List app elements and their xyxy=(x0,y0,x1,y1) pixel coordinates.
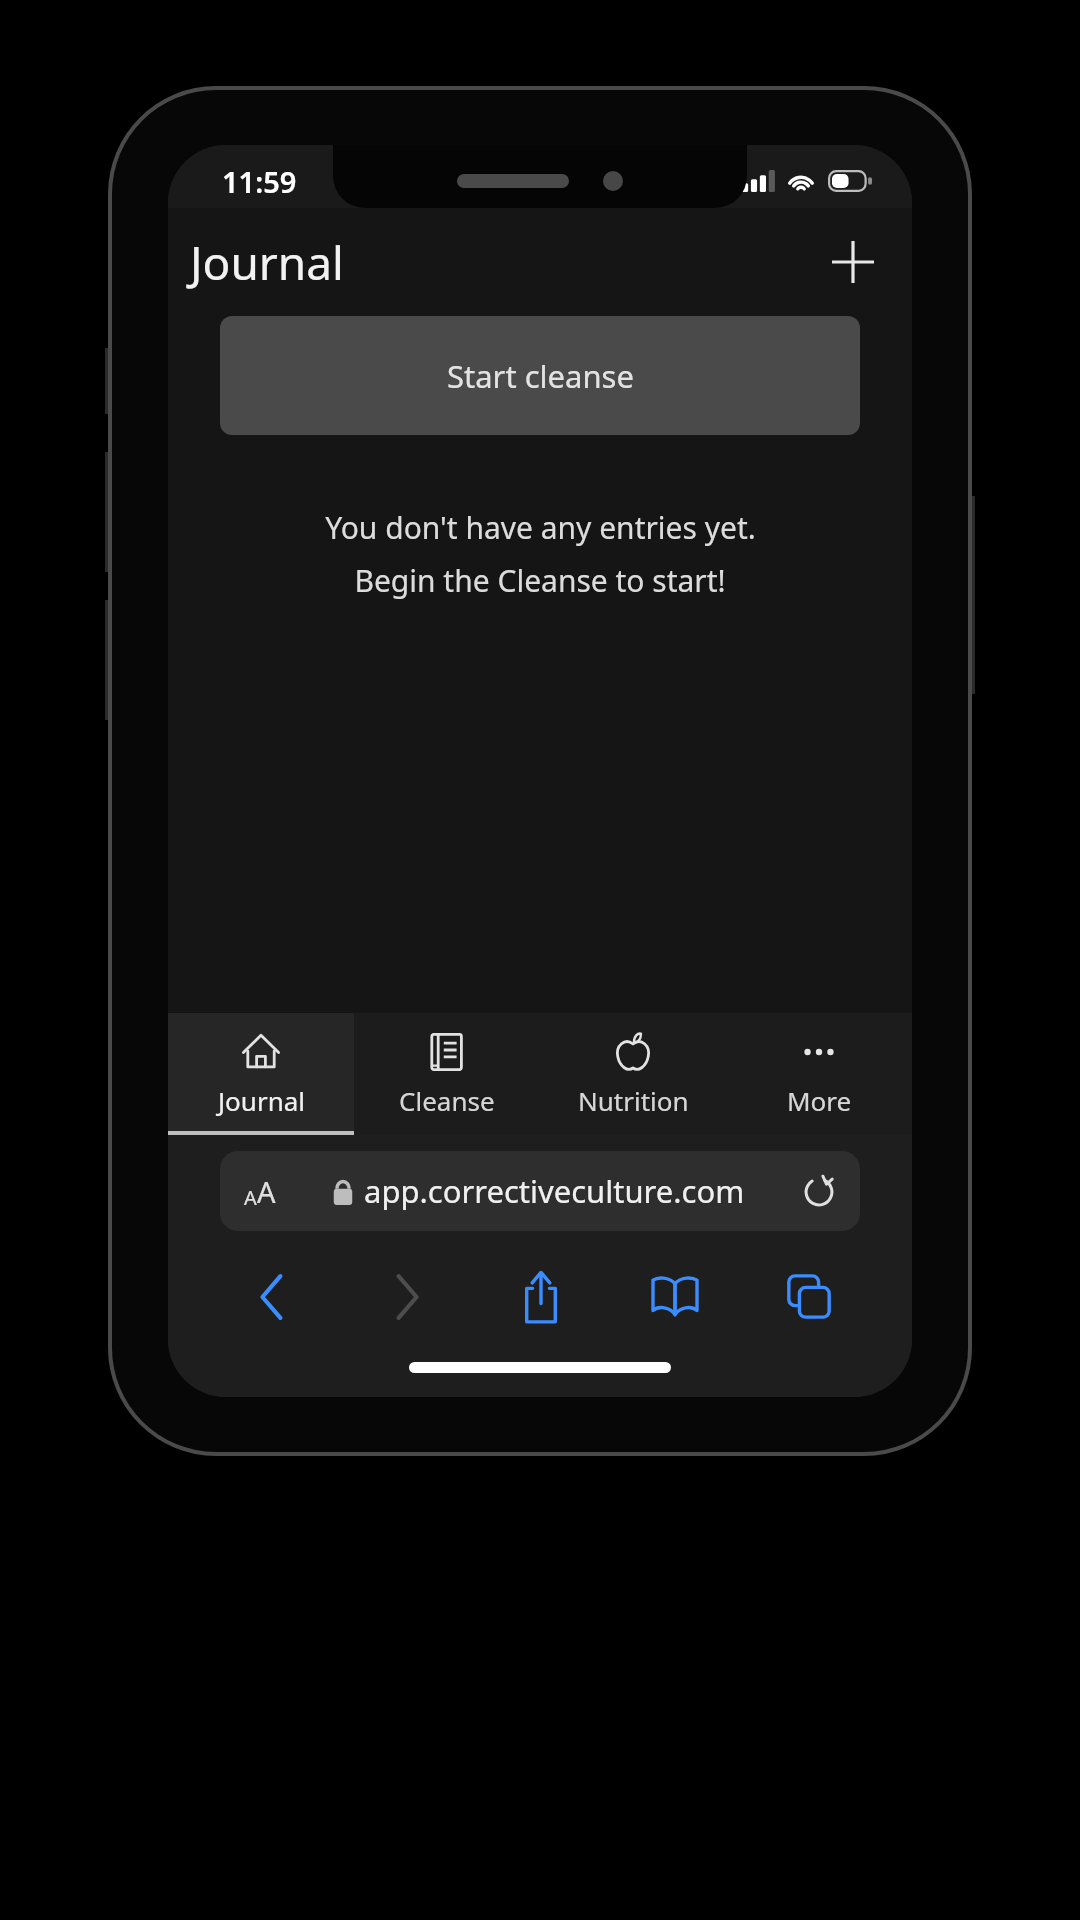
staticText: You don't have any entries yet. xyxy=(325,507,756,548)
staticText: Start cleanse xyxy=(447,355,634,397)
staticText: Cleanse xyxy=(399,1083,495,1118)
staticText: A xyxy=(257,1172,276,1211)
button[interactable]: Tabs xyxy=(742,1253,876,1341)
button[interactable]: Forward xyxy=(339,1253,474,1341)
button[interactable]: Back xyxy=(204,1253,339,1341)
staticText: Nutrition xyxy=(578,1083,689,1118)
button[interactable]: Journal xyxy=(168,1013,354,1135)
staticText: Journal xyxy=(190,231,344,294)
staticText: app.correctiveculture.com xyxy=(364,1170,745,1212)
staticText: 11:59 xyxy=(222,162,297,201)
button[interactable]: Bookmarks xyxy=(608,1253,742,1341)
button[interactable]: Share xyxy=(474,1253,608,1341)
staticText: More xyxy=(787,1083,852,1118)
button[interactable]: More xyxy=(726,1013,912,1135)
button[interactable]: A xyxy=(220,1151,860,1231)
button[interactable]: Start cleanse xyxy=(220,316,860,435)
button[interactable]: Nutrition xyxy=(540,1013,726,1135)
staticText: A xyxy=(244,1184,257,1211)
button[interactable]: Cleanse xyxy=(354,1013,540,1135)
staticText: Begin the Cleanse to start! xyxy=(354,560,726,601)
button[interactable]: Add entry xyxy=(822,231,884,293)
staticText: Journal xyxy=(218,1083,305,1118)
